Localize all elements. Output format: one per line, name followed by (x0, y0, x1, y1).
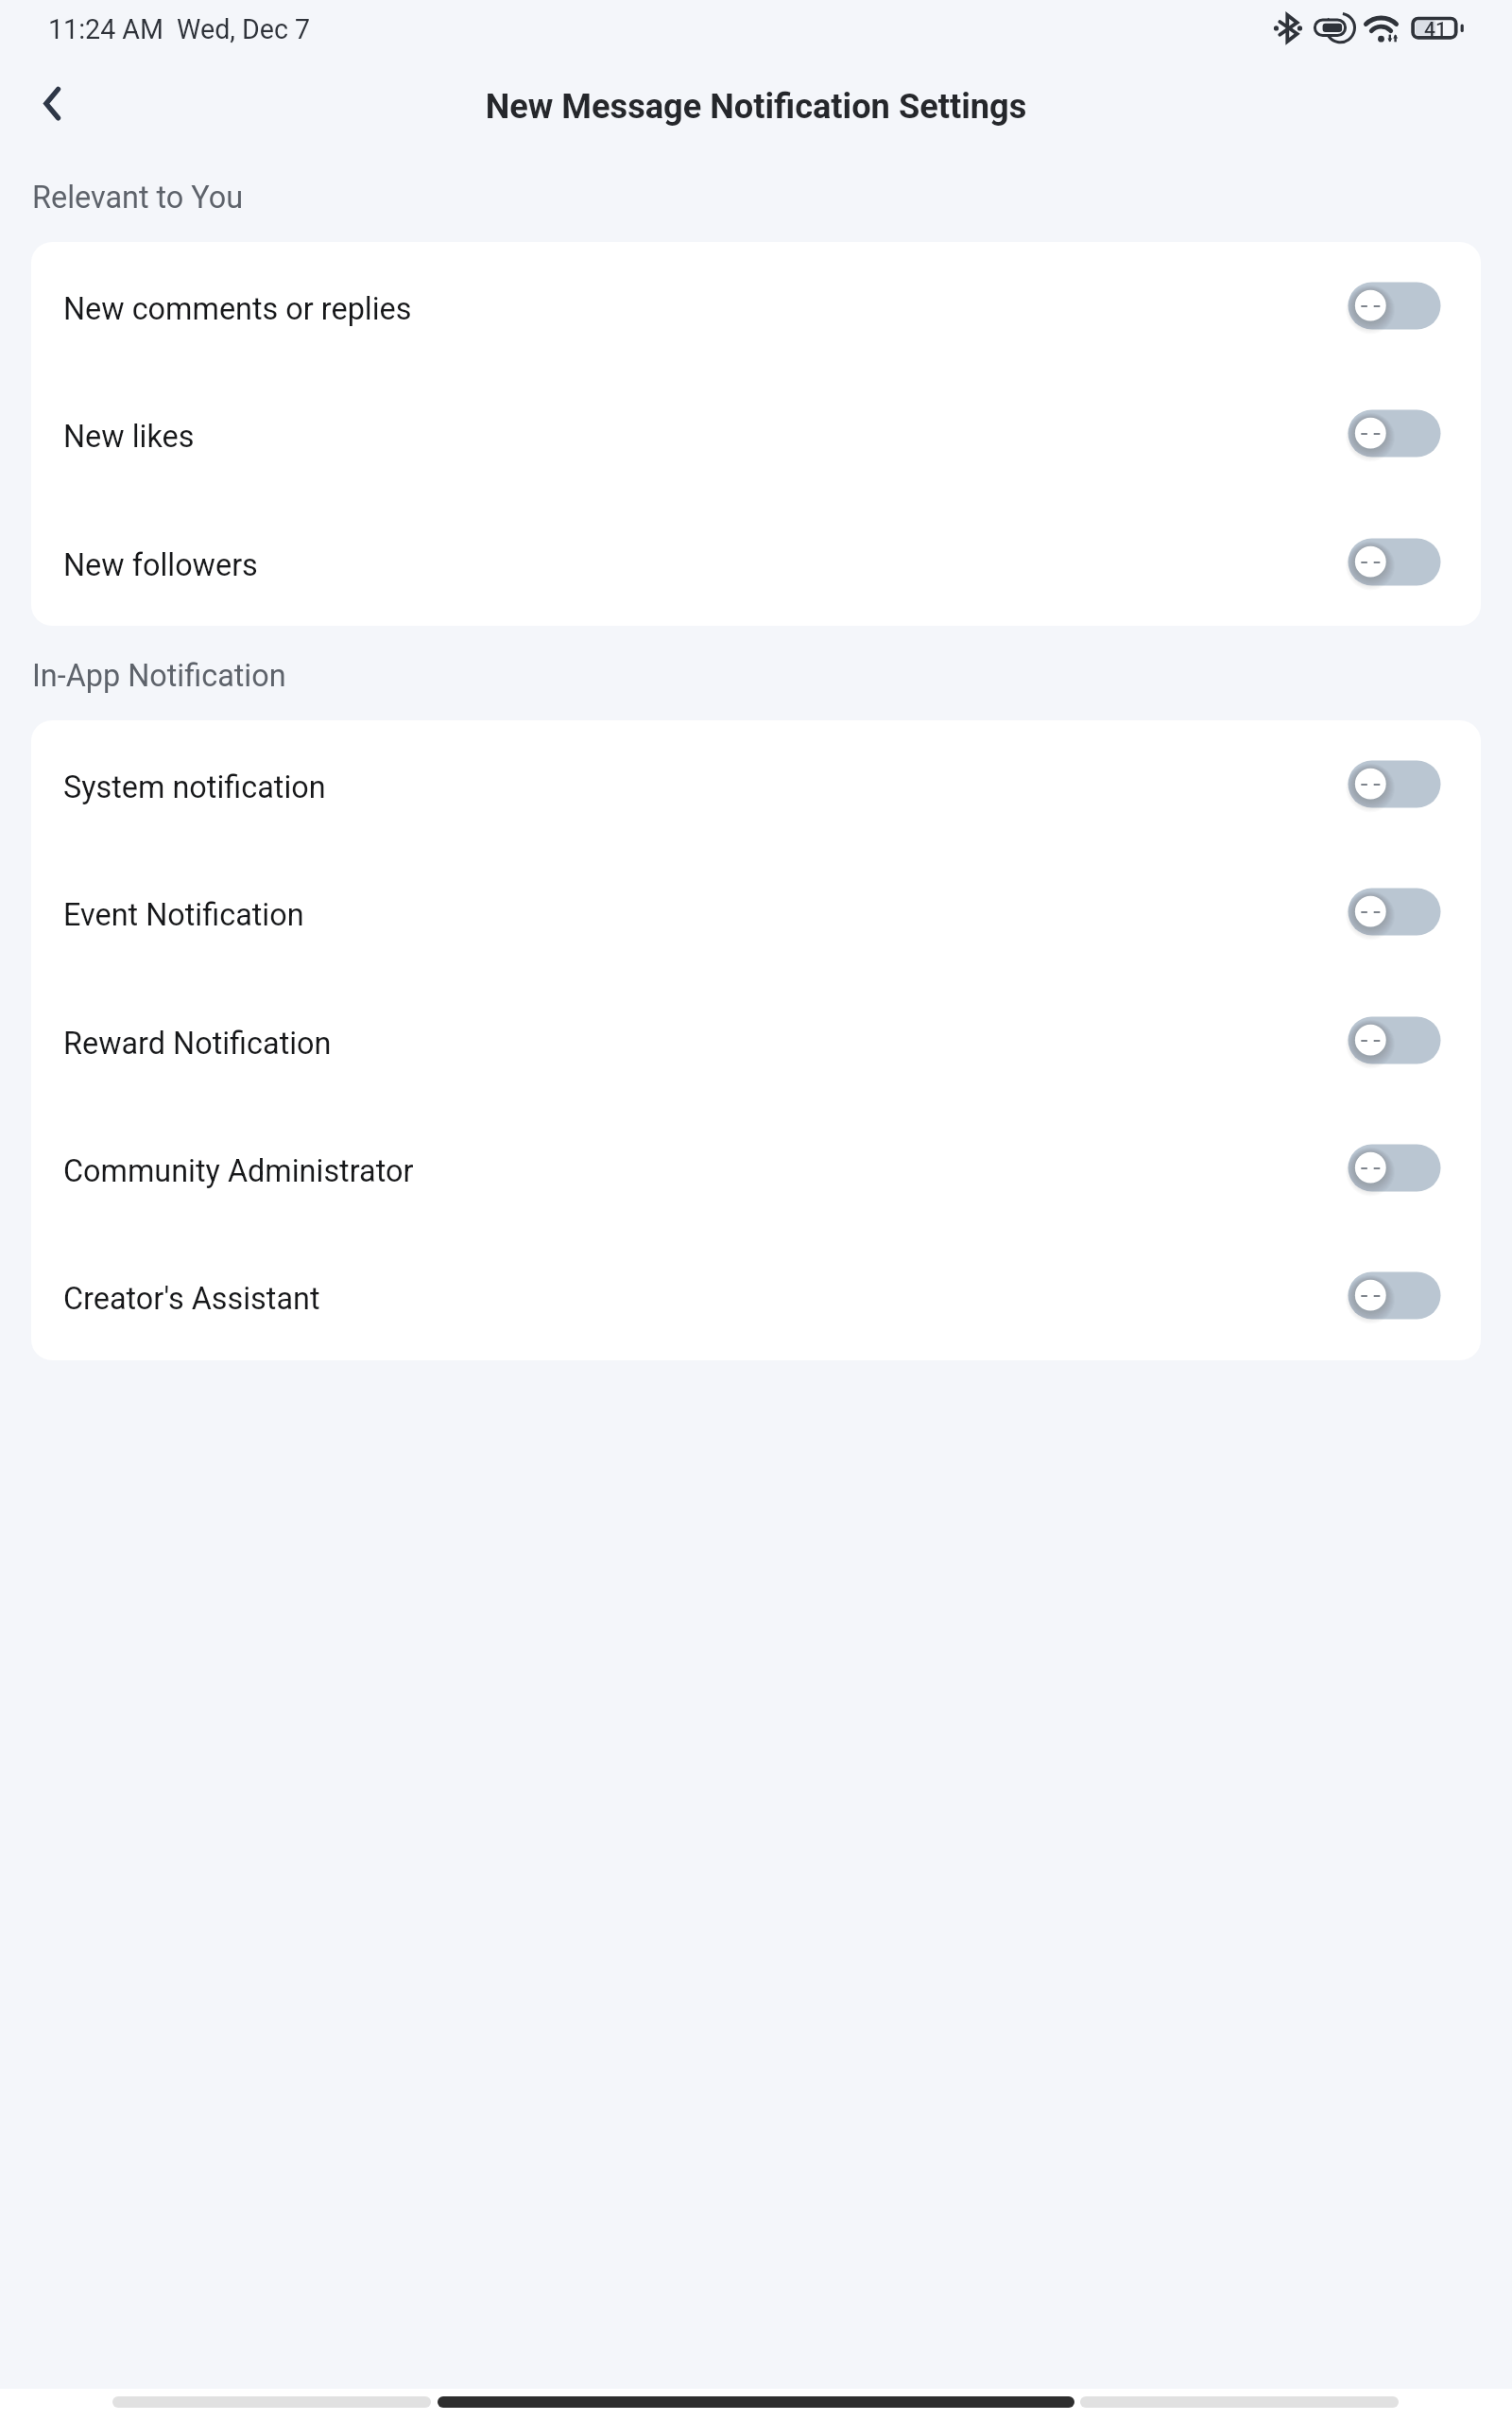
button[interactable]: Toggle (1348, 409, 1441, 458)
button[interactable]: Toggle (1348, 1271, 1441, 1320)
button[interactable]: New followers (31, 498, 1481, 626)
staticText: Event Notification (63, 897, 304, 933)
staticText: New comments or replies (63, 291, 412, 327)
button[interactable]: Toggle (1348, 1016, 1441, 1064)
staticText: New likes (63, 419, 195, 455)
staticText: Relevant to You (32, 180, 244, 216)
button[interactable]: System notification (31, 720, 1481, 848)
button[interactable]: Toggle (1348, 888, 1441, 936)
button[interactable]: Event Notification (31, 848, 1481, 976)
button[interactable]: Back (15, 75, 74, 133)
staticText: In-App Notification (32, 658, 286, 694)
button[interactable]: Toggle (1348, 760, 1441, 808)
staticText: New followers (63, 547, 258, 583)
staticText: System notification (63, 769, 326, 805)
staticText: Community Administrator (63, 1153, 414, 1189)
staticText: Creator's Assistant (63, 1281, 320, 1317)
staticText: New Message Notification Settings (0, 86, 1512, 126)
staticText: 41 (1424, 18, 1447, 42)
button[interactable]: Community Administrator (31, 1104, 1481, 1232)
button[interactable]: New comments or replies (31, 242, 1481, 370)
staticText: 11:24 AM Wed, Dec 7 (48, 13, 311, 45)
button[interactable]: Toggle (1348, 538, 1441, 586)
button[interactable]: Toggle (1348, 282, 1441, 330)
button[interactable]: Reward Notification (31, 977, 1481, 1104)
button[interactable]: New likes (31, 370, 1481, 497)
button[interactable]: Creator's Assistant (31, 1232, 1481, 1359)
button[interactable]: Toggle (1348, 1144, 1441, 1192)
staticText: Reward Notification (63, 1026, 332, 1062)
